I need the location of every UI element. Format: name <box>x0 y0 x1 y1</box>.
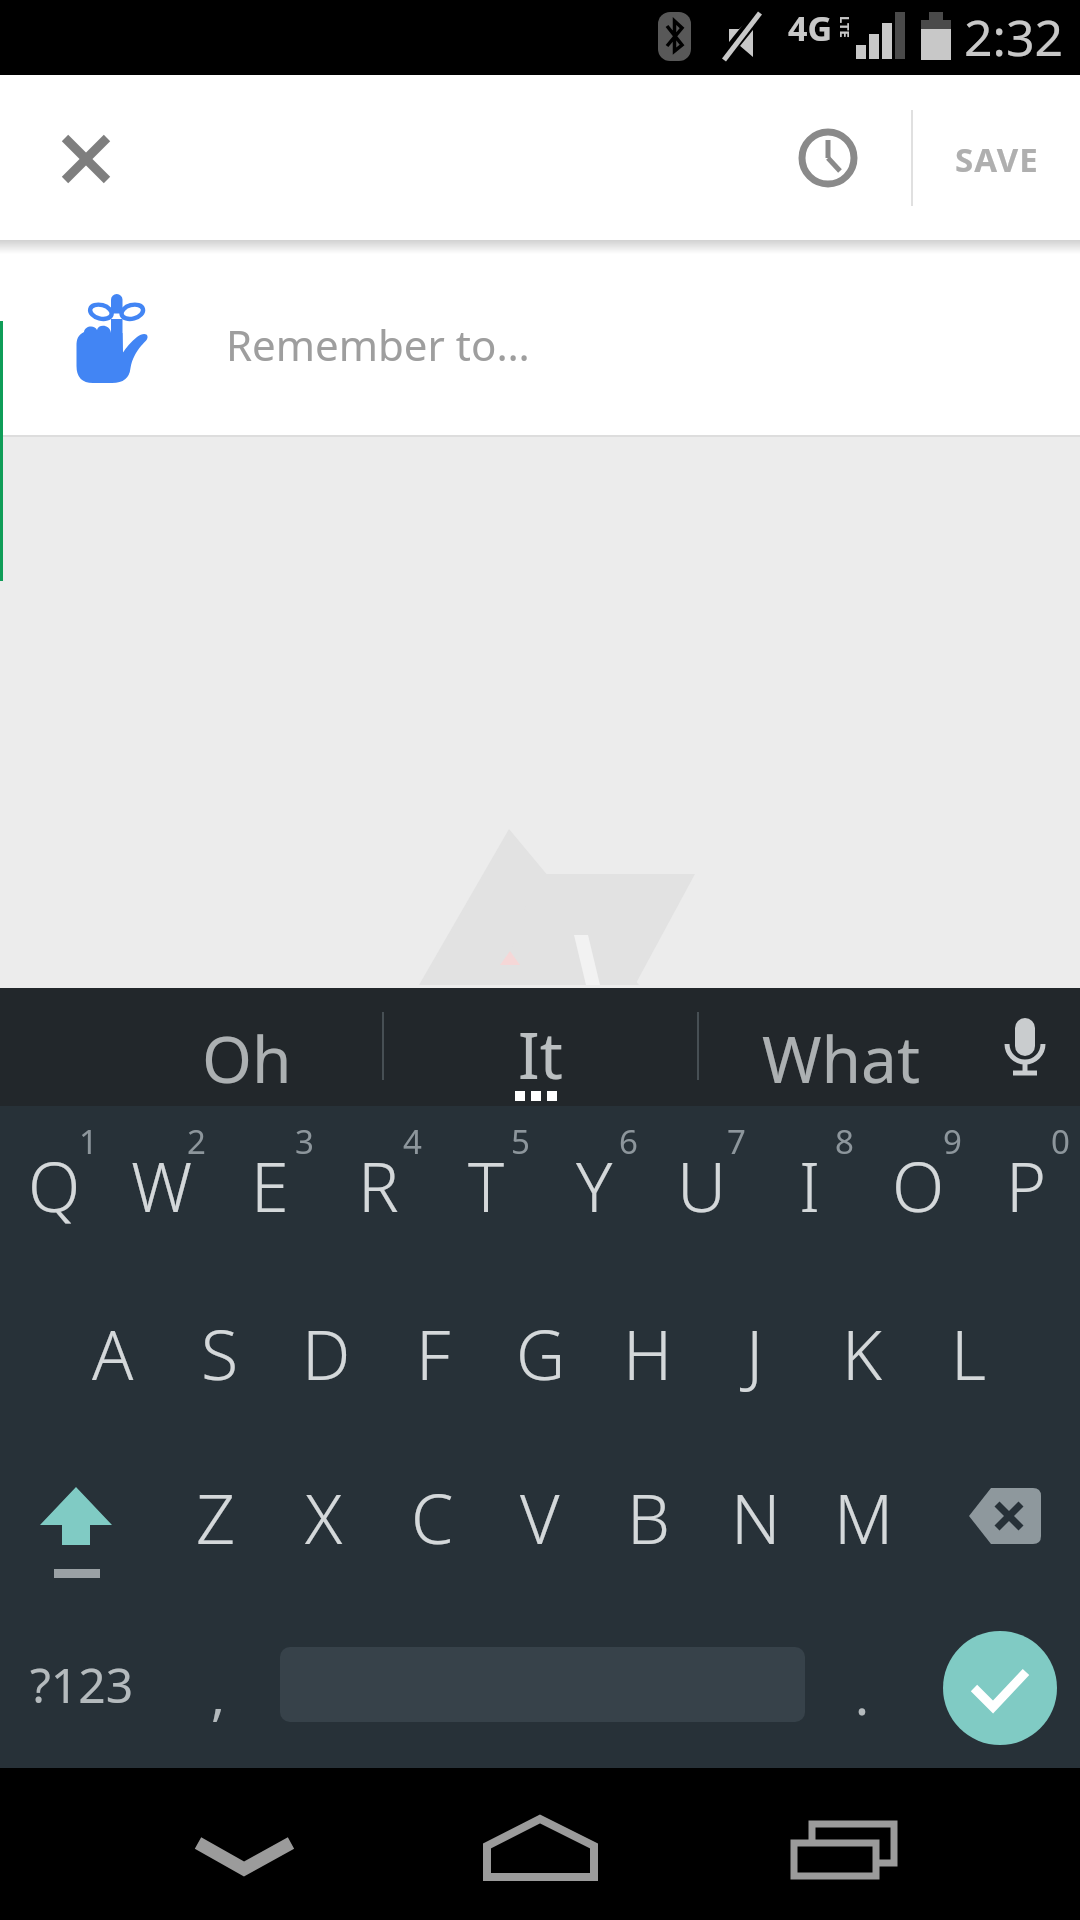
button[interactable]: SAVE <box>927 129 1067 189</box>
staticText: I <box>799 1139 821 1232</box>
staticText: 4G <box>788 5 833 49</box>
button[interactable]: A <box>59 1278 166 1428</box>
button[interactable] <box>40 113 132 205</box>
staticText: 5 <box>511 1119 530 1163</box>
staticText: Y <box>576 1139 613 1232</box>
staticText: T <box>468 1139 505 1232</box>
button[interactable]: Oh <box>117 1013 377 1103</box>
button[interactable]: G <box>487 1278 594 1428</box>
button[interactable]: U <box>648 1115 756 1255</box>
staticText: N <box>731 1471 781 1564</box>
button[interactable]: ?123 <box>2 1609 162 1759</box>
staticText: . <box>855 1659 869 1730</box>
staticText: P <box>1006 1139 1047 1232</box>
staticText: 6 <box>619 1119 638 1163</box>
staticText: H <box>623 1307 673 1400</box>
staticText: 3 <box>295 1119 314 1163</box>
staticText: M <box>834 1471 894 1564</box>
button[interactable]: Remember to… <box>0 240 1080 435</box>
button[interactable]: N <box>702 1442 810 1592</box>
staticText: L <box>951 1307 987 1400</box>
staticText: Oh <box>202 1015 292 1102</box>
staticText: S <box>201 1307 239 1400</box>
staticText: C <box>411 1471 454 1564</box>
staticText: 1 <box>79 1119 98 1163</box>
button[interactable]: . <box>817 1619 907 1769</box>
staticText: Remember to… <box>226 316 530 373</box>
button[interactable]: What <box>711 1013 971 1103</box>
staticText: Q <box>28 1139 81 1232</box>
button[interactable]: X <box>270 1442 378 1592</box>
staticText: 9 <box>943 1119 962 1163</box>
button[interactable]: T <box>432 1115 540 1255</box>
button[interactable]: It <box>440 1009 640 1099</box>
staticText: 2:32 <box>964 3 1064 71</box>
staticText: ?123 <box>30 1652 134 1717</box>
button[interactable] <box>985 1008 1065 1088</box>
staticText: K <box>842 1307 882 1400</box>
button[interactable] <box>770 1793 920 1893</box>
staticText: D <box>302 1307 351 1400</box>
staticText: F <box>416 1307 451 1400</box>
staticText: V <box>520 1471 560 1564</box>
staticText: O <box>892 1139 945 1232</box>
button[interactable] <box>465 1793 615 1893</box>
staticText: 4 <box>403 1119 422 1163</box>
button[interactable]: H <box>594 1278 701 1428</box>
button[interactable]: S <box>166 1278 273 1428</box>
staticText: LTE <box>836 16 854 38</box>
staticText: E <box>251 1139 289 1232</box>
button[interactable]: B <box>594 1442 702 1592</box>
button[interactable]: R <box>324 1115 432 1255</box>
staticText: J <box>746 1307 764 1400</box>
button[interactable]: Q <box>0 1115 108 1255</box>
button[interactable]: , <box>173 1619 263 1769</box>
staticText: 0 <box>1051 1119 1070 1163</box>
button[interactable]: Y <box>540 1115 648 1255</box>
staticText: 7 <box>727 1119 746 1163</box>
button[interactable] <box>782 112 874 204</box>
button[interactable] <box>14 1442 138 1592</box>
button[interactable]: E <box>216 1115 324 1255</box>
staticText: A <box>92 1307 134 1400</box>
staticText: SAVE <box>955 137 1039 182</box>
staticText: Z <box>196 1471 236 1564</box>
button[interactable]: Z <box>162 1442 270 1592</box>
staticText: G <box>516 1307 566 1400</box>
staticText: X <box>305 1471 343 1564</box>
button[interactable] <box>170 1793 320 1893</box>
staticText: R <box>358 1139 399 1232</box>
button[interactable]: O <box>864 1115 972 1255</box>
staticText: , <box>211 1659 225 1730</box>
button[interactable]: I <box>756 1115 864 1255</box>
button[interactable]: J <box>701 1278 808 1428</box>
button[interactable]: C <box>378 1442 486 1592</box>
staticText: It <box>518 1011 563 1098</box>
staticText: 2 <box>187 1119 206 1163</box>
button[interactable]: M <box>810 1442 918 1592</box>
button[interactable]: W <box>108 1115 216 1255</box>
button[interactable]: K <box>808 1278 915 1428</box>
staticText: B <box>627 1471 670 1564</box>
staticText: U <box>677 1139 727 1232</box>
button[interactable] <box>945 1442 1080 1592</box>
staticText: 8 <box>835 1119 854 1163</box>
button[interactable]: L <box>915 1278 1022 1428</box>
button[interactable]: F <box>380 1278 487 1428</box>
button[interactable]: V <box>486 1442 594 1592</box>
staticText: W <box>131 1139 193 1232</box>
staticText: What <box>762 1015 921 1102</box>
button[interactable]: P <box>972 1115 1080 1255</box>
button[interactable] <box>943 1631 1057 1745</box>
button[interactable]: D <box>273 1278 380 1428</box>
